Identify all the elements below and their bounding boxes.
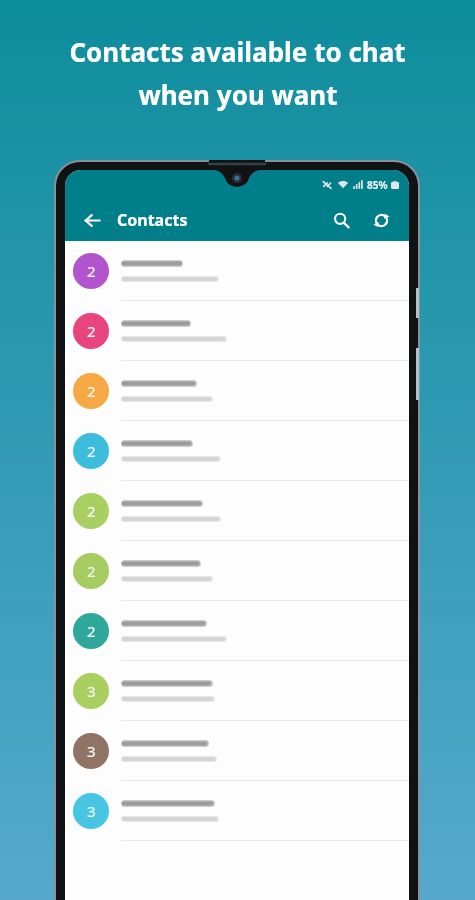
staticText: when you want: [138, 77, 338, 112]
button[interactable]: 2: [65, 421, 409, 481]
staticText: 2: [87, 561, 96, 581]
staticText: 2: [87, 501, 96, 521]
staticText: Contacts: [117, 209, 188, 231]
staticText: Contacts available to chat: [69, 34, 406, 69]
staticText: 2: [87, 441, 96, 461]
staticText: 85%: [367, 178, 388, 192]
staticText: 2: [87, 381, 96, 401]
button[interactable]: 2: [65, 541, 409, 601]
button[interactable]: 3: [65, 721, 409, 781]
button[interactable]: 2: [65, 481, 409, 541]
staticText: 3: [87, 741, 96, 761]
button[interactable]: 2: [65, 601, 409, 661]
button[interactable]: 3: [65, 781, 409, 841]
staticText: 2: [87, 261, 96, 281]
staticText: 2: [87, 321, 96, 341]
button[interactable]: Sync: [365, 204, 397, 236]
button[interactable]: Back: [77, 205, 107, 235]
staticText: 3: [87, 681, 96, 701]
button[interactable]: 3: [65, 661, 409, 721]
button[interactable]: 2: [65, 301, 409, 361]
button[interactable]: Search: [325, 204, 357, 236]
button[interactable]: 2: [65, 361, 409, 421]
staticText: 3: [87, 801, 96, 821]
staticText: 2: [87, 621, 96, 641]
button[interactable]: 2: [65, 241, 409, 301]
